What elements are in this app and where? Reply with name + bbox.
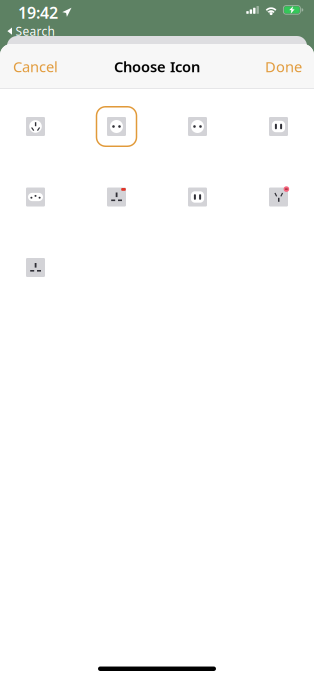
button[interactable]: Type G switched outlet [96, 176, 137, 217]
button[interactable]: Type G outlet [15, 247, 56, 288]
staticText: Choose Icon [114, 57, 200, 76]
button[interactable]: Done [255, 45, 314, 88]
staticText: Search [15, 23, 54, 39]
button[interactable]: Type I outlet [15, 106, 56, 147]
button[interactable]: Type F outlet [177, 106, 218, 147]
button[interactable]: Type I switched outlet [258, 176, 299, 217]
staticText: Done [265, 57, 302, 76]
button[interactable]: Cancel [0, 45, 68, 88]
button[interactable]: Type N outlet [15, 176, 56, 217]
button[interactable]: Type C outlet [96, 106, 137, 147]
button[interactable]: Type B outlet [177, 176, 218, 217]
button[interactable]: Type A outlet [258, 106, 299, 147]
staticText: Cancel [13, 57, 58, 76]
staticText: 19:42 [18, 2, 58, 23]
